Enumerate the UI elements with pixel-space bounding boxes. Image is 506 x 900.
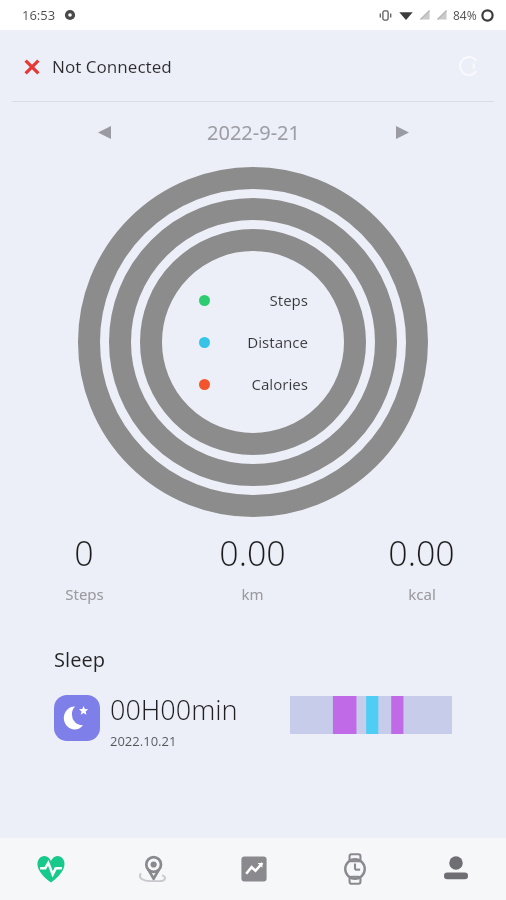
staticText: Steps [65, 584, 104, 604]
button[interactable]: 00H00min [0, 691, 506, 750]
staticText: 00H00min [110, 691, 238, 728]
button[interactable]: 0.00 [168, 530, 337, 604]
staticText: Sleep [54, 646, 105, 673]
staticText: 16:53 [22, 6, 56, 24]
button[interactable]: Previous day [88, 116, 120, 148]
staticText: 0.00 [219, 530, 286, 576]
button[interactable]: Profile [405, 838, 506, 900]
button[interactable]: Health [0, 838, 102, 900]
staticText: kcal [408, 584, 436, 604]
staticText: Not Connected [52, 55, 172, 78]
staticText: 84% [453, 7, 477, 23]
staticText: Calories [251, 374, 308, 394]
staticText: Steps [269, 290, 308, 310]
button[interactable]: Device [304, 838, 405, 900]
staticText: km [241, 584, 264, 604]
button[interactable]: Next day [386, 116, 418, 148]
staticText: 0.00 [388, 530, 455, 576]
staticText: 2022-9-21 [207, 119, 300, 146]
button[interactable]: Refresh [454, 51, 484, 81]
button[interactable]: Location [102, 838, 203, 900]
staticText: 2022.10.21 [110, 732, 177, 750]
button[interactable]: 0 [0, 530, 168, 604]
staticText: Distance [247, 332, 308, 352]
staticText: 0 [74, 530, 94, 576]
button[interactable]: Not Connected [22, 55, 172, 78]
button[interactable]: 0.00 [337, 530, 506, 604]
button[interactable]: Statistics [203, 838, 304, 900]
